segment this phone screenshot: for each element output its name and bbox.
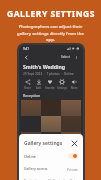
staticText: Add <box>36 86 41 90</box>
button[interactable]: Select <box>61 55 70 59</box>
button[interactable]: Photo <box>61 132 81 148</box>
staticText: Online <box>24 154 36 159</box>
staticText: Expiration <box>24 178 41 180</box>
staticText: GALLERY SETTINGS <box>7 8 95 20</box>
staticText: Photographers can adjust their gallery s… <box>17 24 84 42</box>
staticText: No Expiration Date <box>48 178 78 180</box>
button[interactable]: Close <box>70 139 78 147</box>
staticText: Favorite <box>45 86 55 90</box>
button[interactable]: Back <box>23 54 29 60</box>
button[interactable]: Favorite <box>44 79 56 90</box>
button[interactable]: Photo <box>41 116 61 132</box>
button[interactable]: Photo <box>21 132 41 148</box>
staticText: Gallery settings <box>24 140 63 147</box>
staticText: 29 Sept 2023 · 7 photos · Online <box>23 72 74 76</box>
button[interactable]: Online <box>24 153 78 159</box>
staticText: Share <box>24 86 31 90</box>
button[interactable]: Add <box>33 79 44 90</box>
button[interactable]: Photo <box>21 100 41 116</box>
staticText: Smith's Wedding <box>23 63 66 70</box>
staticText: 9:41 <box>23 47 29 51</box>
button[interactable]: Gallery access <box>24 166 78 171</box>
staticText: Select <box>61 55 70 59</box>
button[interactable]: Share <box>22 79 33 90</box>
button[interactable]: Online toggle <box>68 153 78 159</box>
button[interactable]: Photo <box>41 132 61 148</box>
staticText: Settings <box>57 86 67 90</box>
staticText: More <box>71 86 78 90</box>
button[interactable]: More <box>68 79 80 90</box>
staticText: Private <box>67 167 78 171</box>
staticText: Reception <box>23 93 41 98</box>
button[interactable]: Expiration <box>24 178 78 180</box>
staticText: Gallery access <box>24 166 48 171</box>
button[interactable]: More options <box>73 54 79 60</box>
button[interactable]: Photo <box>61 100 81 116</box>
button[interactable]: Settings <box>56 79 68 90</box>
